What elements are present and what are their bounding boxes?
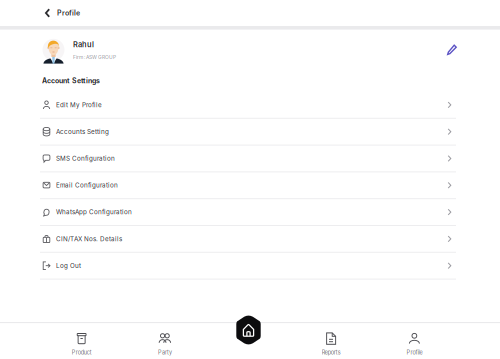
staticText: Product — [72, 349, 92, 356]
button[interactable]: CIN/TAX Nos. Details — [40, 226, 456, 253]
staticText: Profile — [406, 349, 422, 356]
button[interactable]: Party — [123, 333, 206, 356]
staticText: Edit My Profile — [56, 101, 102, 109]
staticText: CIN/TAX Nos. Details — [56, 235, 122, 243]
staticText: Reports — [322, 349, 341, 356]
staticText: Firm : ASW GROUP — [73, 54, 116, 60]
staticText: Account Settings — [42, 77, 100, 85]
button[interactable]: Product — [40, 333, 123, 356]
button[interactable]: SMS Configuration — [40, 146, 456, 172]
button[interactable]: Home — [236, 314, 261, 345]
staticText: Profile — [57, 9, 80, 17]
button[interactable]: WhatsApp Configuration — [40, 199, 456, 226]
button[interactable]: Reports — [289, 333, 373, 356]
button[interactable]: Email Configuration — [40, 172, 456, 199]
button[interactable]: Log Out — [40, 253, 456, 280]
button[interactable]: Back — [43, 0, 52, 26]
staticText: Accounts Setting — [56, 128, 109, 135]
staticText: WhatsApp Configuration — [56, 208, 132, 216]
staticText: Email Configuration — [56, 181, 118, 189]
button[interactable]: Edit My Profile — [40, 92, 456, 119]
staticText: Log Out — [56, 262, 81, 269]
staticText: Rahul — [73, 40, 94, 49]
staticText: Party — [158, 349, 172, 356]
button[interactable]: Accounts Setting — [40, 119, 456, 146]
button[interactable]: Profile — [373, 333, 456, 356]
button[interactable]: Edit profile — [442, 40, 462, 60]
staticText: SMS Configuration — [56, 155, 115, 162]
